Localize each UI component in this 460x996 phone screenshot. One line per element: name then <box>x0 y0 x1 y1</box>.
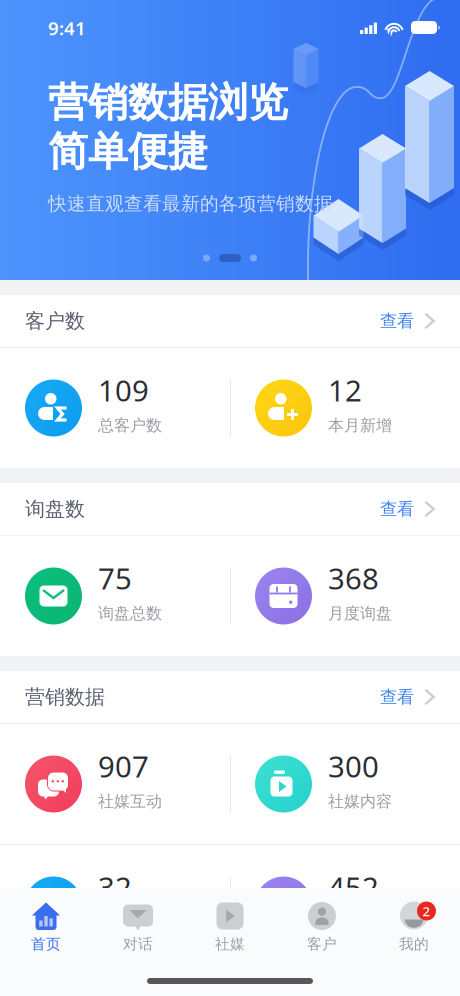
staticText: 简单便捷 <box>48 127 208 176</box>
button[interactable]: 对话 <box>92 888 184 954</box>
staticText: 快速直观查看最新的各项营销数据 <box>48 192 333 215</box>
staticText: 907 <box>98 747 149 786</box>
button[interactable]: 查看 <box>380 484 435 534</box>
staticText: 广告数 <box>98 913 146 932</box>
staticText: 询盘总数 <box>98 604 162 623</box>
staticText: 2 <box>422 902 430 920</box>
staticText: 75 <box>98 559 132 598</box>
staticText: 368 <box>328 559 379 598</box>
staticText: 社媒 <box>215 935 245 953</box>
staticText: 总客户数 <box>98 416 162 435</box>
staticText: 社媒互动 <box>98 792 162 811</box>
button[interactable]: 客户 <box>276 888 368 954</box>
staticText: 300 <box>328 747 379 786</box>
staticText: 本月新增 <box>328 416 392 435</box>
staticText: 查看 <box>380 310 414 332</box>
staticText: 查看 <box>380 498 414 520</box>
staticText: 月度询盘 <box>328 604 392 623</box>
staticText: 客户数 <box>25 309 85 333</box>
staticText: 询盘数 <box>25 497 85 521</box>
staticText: 12 <box>328 371 362 410</box>
button[interactable]: 查看 <box>380 672 435 722</box>
staticText: 109 <box>98 371 149 410</box>
staticText: 452 <box>328 868 379 907</box>
staticText: 首页 <box>31 935 61 953</box>
staticText: 对话 <box>123 935 153 953</box>
staticText: 营销数据 <box>25 685 105 709</box>
button[interactable]: 首页 <box>0 888 92 954</box>
button[interactable]: 查看 <box>380 296 435 346</box>
staticText: 社媒内容 <box>328 792 392 811</box>
staticText: 查看 <box>380 686 414 708</box>
staticText: 32 <box>98 868 132 907</box>
staticText: 客户 <box>307 935 337 953</box>
staticText: 广告展现 <box>328 913 392 932</box>
button[interactable]: 2 <box>368 888 460 954</box>
staticText: 营销数据浏览 <box>48 78 288 127</box>
staticText: 9:41 <box>48 16 86 40</box>
button[interactable]: 社媒 <box>184 888 276 954</box>
staticText: 我的 <box>399 935 429 953</box>
